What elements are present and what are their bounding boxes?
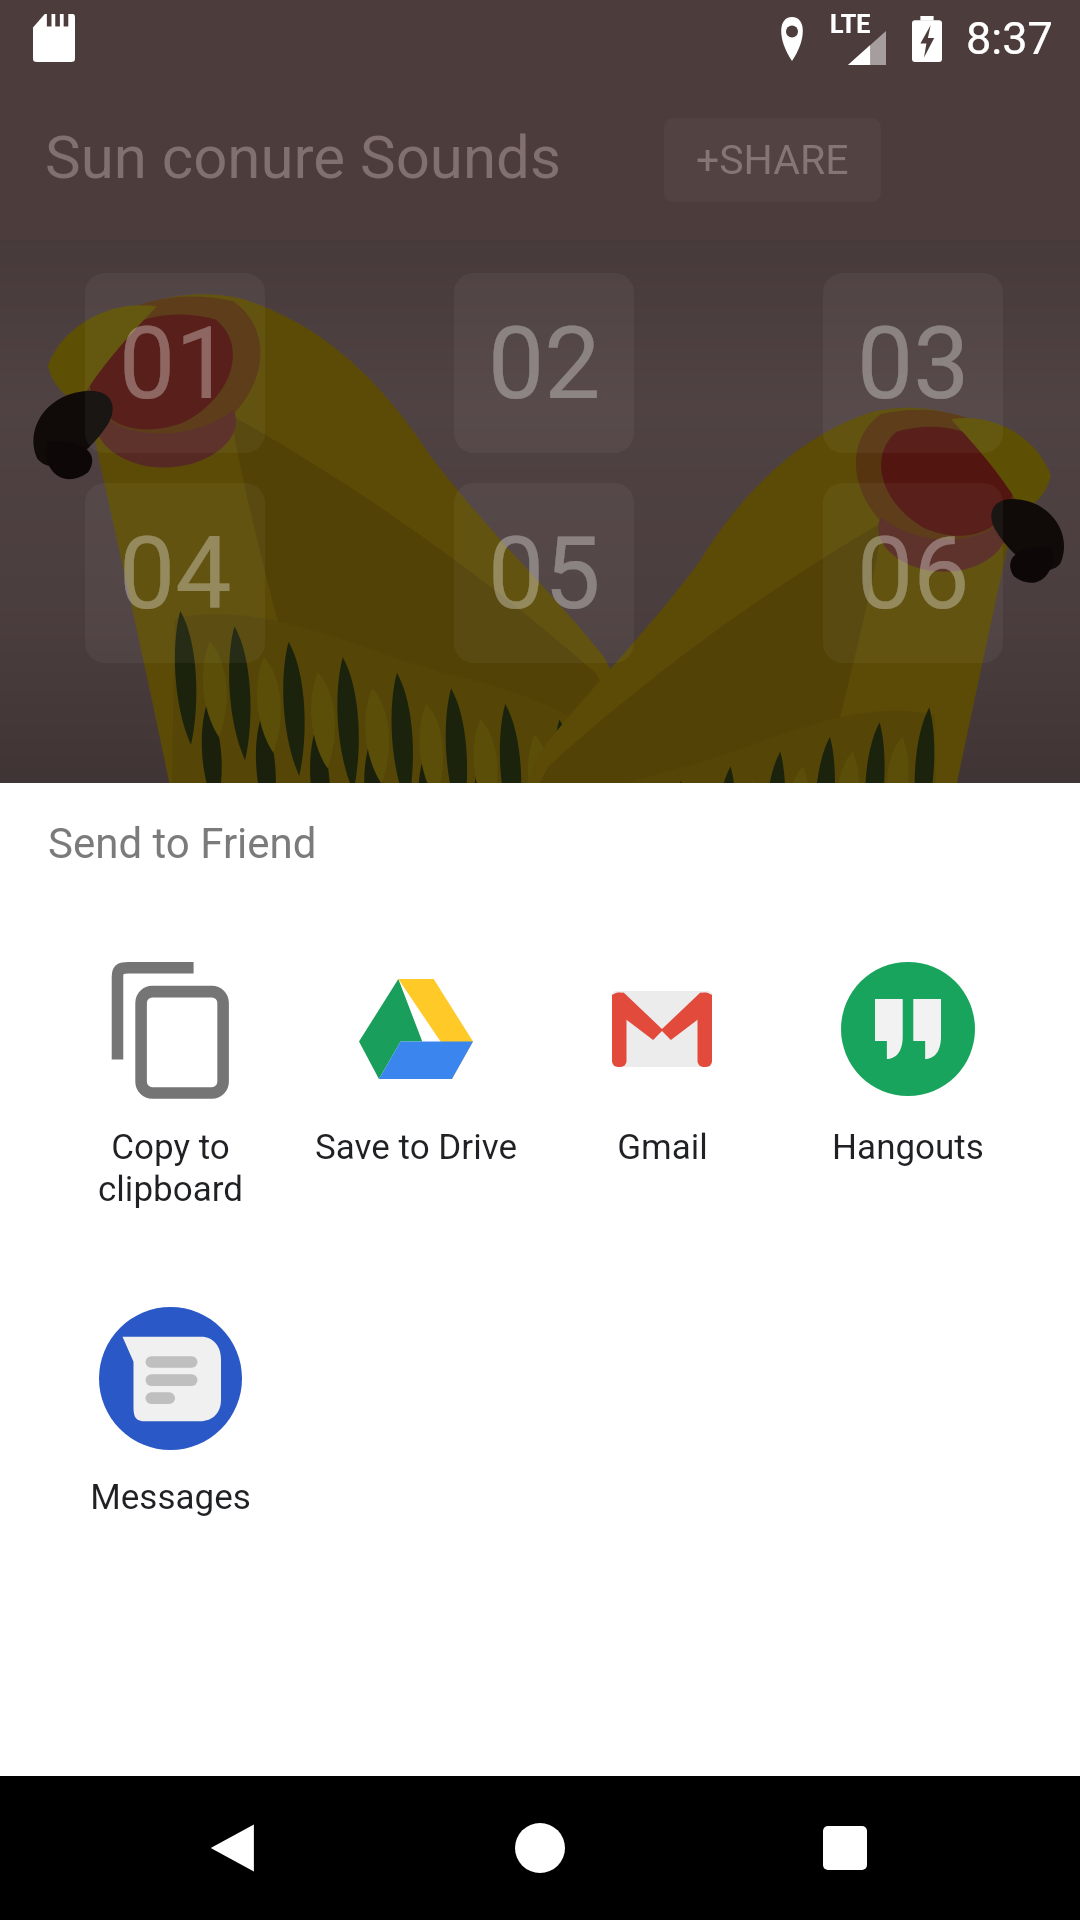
button[interactable]: 06 — [823, 483, 1003, 663]
staticText: 03 — [857, 305, 970, 422]
staticText: 05 — [488, 515, 601, 632]
staticText: Send to Friend — [48, 819, 317, 868]
staticText: +SHARE — [696, 136, 849, 184]
staticText: Messages — [90, 1477, 251, 1518]
button[interactable]: Home — [470, 1778, 610, 1918]
staticText: 06 — [857, 515, 970, 632]
button[interactable]: 01 — [85, 273, 265, 453]
button[interactable]: Recents — [775, 1778, 915, 1918]
staticText: Sun conure Sounds — [45, 122, 561, 192]
staticText: 8:37 — [966, 12, 1053, 65]
button[interactable]: Save to Drive — [293, 956, 539, 1168]
button[interactable]: 03 — [823, 273, 1003, 453]
button[interactable]: 05 — [454, 483, 634, 663]
staticText: Gmail — [617, 1127, 708, 1168]
button[interactable]: Back — [165, 1778, 305, 1918]
staticText: LTE — [830, 10, 871, 39]
staticText: 01 — [119, 305, 232, 422]
button[interactable]: Hangouts — [785, 956, 1031, 1168]
button[interactable]: 02 — [454, 273, 634, 453]
staticText: 02 — [488, 305, 601, 422]
button[interactable]: 04 — [85, 483, 265, 663]
button[interactable]: Messages — [47, 1306, 293, 1518]
staticText: Hangouts — [832, 1127, 984, 1168]
button[interactable]: Gmail — [539, 956, 785, 1168]
staticText: Save to Drive — [315, 1127, 517, 1168]
button[interactable]: +SHARE — [664, 118, 881, 202]
staticText: 04 — [119, 515, 232, 632]
staticText: Copy to clipboard — [98, 1127, 243, 1210]
button[interactable]: Copy to clipboard — [47, 956, 293, 1210]
